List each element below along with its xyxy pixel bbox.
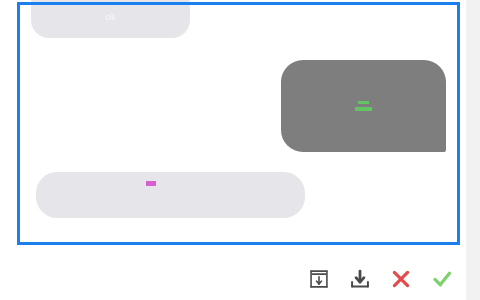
button[interactable]: [36, 172, 305, 218]
button[interactable]: Download: [339, 261, 380, 297]
button[interactable]: ok: [31, 0, 190, 38]
staticText: ok: [105, 10, 116, 22]
button[interactable]: Confirm: [421, 261, 462, 297]
button[interactable]: Cancel: [380, 261, 421, 297]
button[interactable]: [281, 60, 446, 152]
button[interactable]: Save: [298, 261, 339, 297]
